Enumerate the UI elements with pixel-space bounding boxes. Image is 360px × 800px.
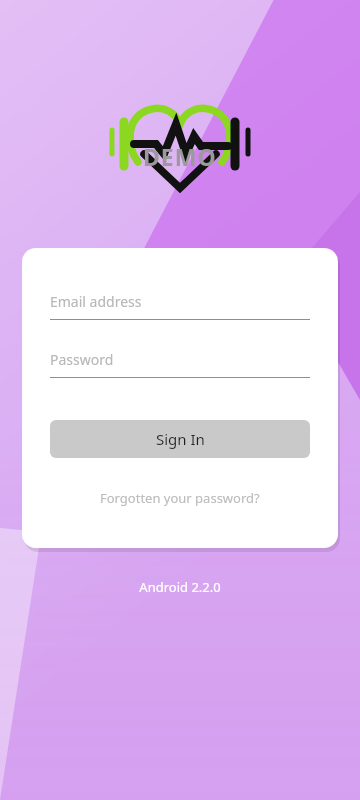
staticText: Android 2.2.0 [0,578,360,596]
staticText: Email address [50,292,142,311]
staticText: DEMO [143,141,217,172]
staticText: Forgotten your password? [100,489,260,507]
button[interactable]: Email address field [50,292,310,320]
staticText: Sign In [156,429,205,449]
button[interactable]: Forgotten your password? [90,484,270,512]
button[interactable]: Password field [50,350,310,378]
button[interactable]: Sign In [50,420,310,458]
staticText: Password [50,350,114,369]
